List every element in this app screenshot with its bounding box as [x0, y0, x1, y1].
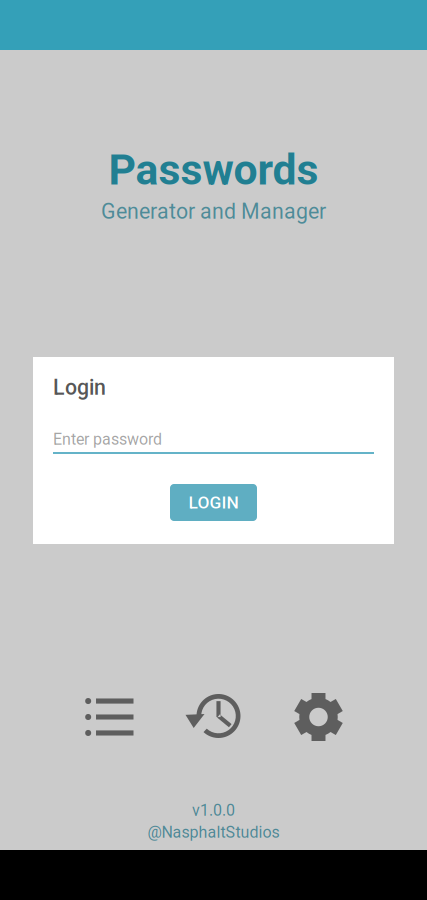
button[interactable]: History: [161, 687, 265, 747]
staticText: Passwords: [108, 145, 318, 195]
staticText: v1.0.0: [192, 801, 235, 820]
staticText: LOGIN: [188, 492, 238, 513]
staticText: Enter password: [53, 430, 162, 449]
staticText: Login: [53, 375, 106, 400]
staticText: @NasphaltStudios: [147, 823, 279, 842]
button[interactable]: Settings: [265, 687, 369, 747]
button[interactable]: Saved passwords: [57, 687, 161, 747]
staticText: Generator and Manager: [101, 199, 326, 224]
button[interactable]: LOGIN: [170, 484, 257, 521]
